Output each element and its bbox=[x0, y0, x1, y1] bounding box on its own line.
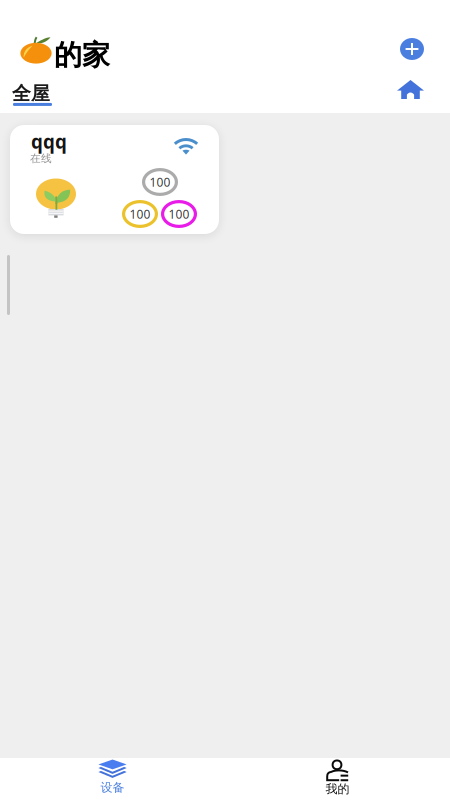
button[interactable]: Home bbox=[392, 75, 429, 104]
button[interactable]: Add device bbox=[394, 32, 430, 66]
staticText: qqq bbox=[31, 129, 67, 154]
button[interactable]: 我的 bbox=[225, 758, 450, 800]
staticText: 100 bbox=[149, 174, 170, 190]
staticText: 100 bbox=[168, 206, 189, 222]
staticText: 在线 bbox=[30, 152, 52, 165]
staticText: 全屋 bbox=[12, 82, 50, 105]
button[interactable]: 设备 bbox=[0, 758, 225, 800]
staticText: 设备 bbox=[100, 780, 124, 795]
staticText: 100 bbox=[129, 206, 150, 222]
button[interactable]: 全屋 bbox=[12, 82, 54, 112]
staticText: 我的 bbox=[325, 782, 349, 796]
staticText: 的家 bbox=[54, 38, 110, 72]
button[interactable]: qqq bbox=[10, 125, 219, 234]
